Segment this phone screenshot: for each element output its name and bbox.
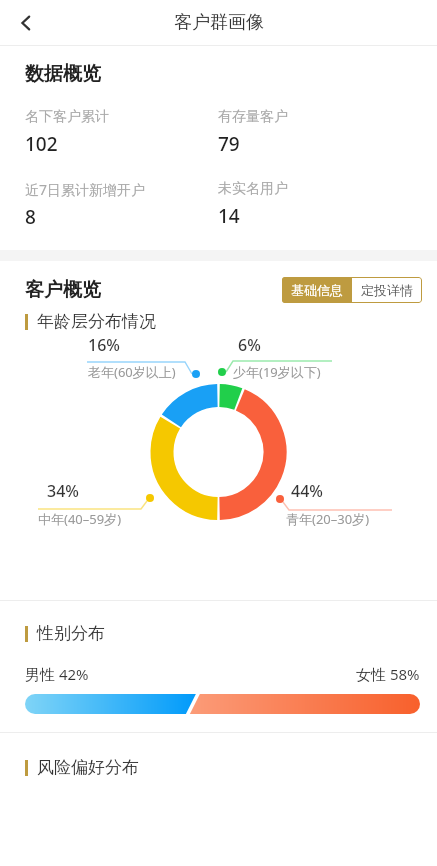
staticText: 定投详情 xyxy=(361,282,413,298)
staticText: 老年(60岁以上) xyxy=(88,363,176,381)
staticText: 女性 58% xyxy=(356,664,420,684)
staticText: 16% xyxy=(88,334,120,356)
staticText: 有存量客户 xyxy=(218,108,288,126)
staticText: 数据概览 xyxy=(25,62,101,86)
staticText: 79 xyxy=(218,131,240,157)
staticText: 风险偏好分布 xyxy=(37,757,139,778)
staticText: 性别分布 xyxy=(37,623,105,644)
staticText: 少年(19岁以下) xyxy=(233,363,321,381)
staticText: 男性 42% xyxy=(25,664,89,684)
button[interactable]: 基础信息 xyxy=(282,277,352,303)
staticText: 青年(20–30岁) xyxy=(286,510,370,528)
staticText: 年龄层分布情况 xyxy=(37,311,156,332)
staticText: 102 xyxy=(25,131,58,157)
staticText: 名下客户累计 xyxy=(25,108,109,126)
staticText: 44% xyxy=(291,480,323,502)
staticText: 未实名用户 xyxy=(218,180,288,198)
staticText: 14 xyxy=(218,203,240,229)
staticText: 8 xyxy=(25,204,36,230)
staticText: 基础信息 xyxy=(291,282,343,298)
staticText: 客户群画像 xyxy=(174,11,264,34)
staticText: 34% xyxy=(47,480,79,502)
button[interactable]: Back xyxy=(6,3,46,43)
button[interactable]: 定投详情 xyxy=(352,277,422,303)
staticText: 近7日累计新增开户 xyxy=(25,180,146,199)
staticText: 客户概览 xyxy=(25,278,101,302)
staticText: 中年(40–59岁) xyxy=(38,510,122,528)
staticText: 6% xyxy=(238,334,261,356)
